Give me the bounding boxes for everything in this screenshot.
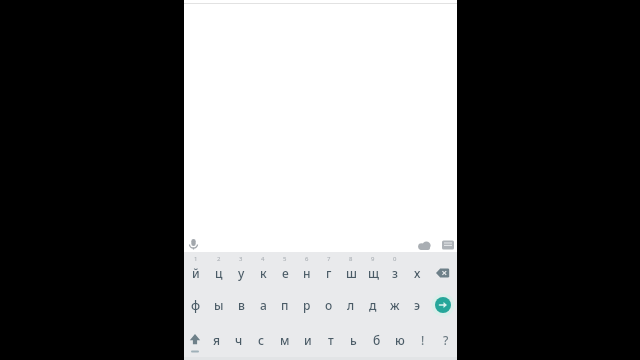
staticText: 3 bbox=[239, 255, 243, 263]
staticText: п bbox=[281, 297, 289, 313]
button[interactable]: а bbox=[252, 287, 274, 322]
staticText: р bbox=[303, 297, 311, 313]
button[interactable]: 7 bbox=[318, 252, 340, 287]
button[interactable]: х bbox=[406, 252, 428, 287]
button[interactable]: о bbox=[318, 287, 340, 322]
button[interactable]: ы bbox=[207, 287, 230, 322]
button[interactable]: м bbox=[273, 322, 296, 357]
button[interactable]: ? bbox=[434, 322, 457, 357]
button[interactable] bbox=[428, 252, 457, 287]
staticText: ж bbox=[390, 297, 400, 313]
staticText: с bbox=[258, 332, 265, 348]
button[interactable]: ж bbox=[384, 287, 406, 322]
button[interactable]: 0 bbox=[384, 252, 406, 287]
button[interactable]: с bbox=[250, 322, 273, 357]
button[interactable]: 5 bbox=[274, 252, 296, 287]
staticText: т bbox=[328, 332, 334, 348]
staticText: 9 bbox=[371, 255, 375, 263]
button[interactable]: ф bbox=[184, 287, 207, 322]
button[interactable]: э bbox=[406, 287, 428, 322]
staticText: ф bbox=[191, 297, 201, 313]
staticText: 0 bbox=[393, 255, 397, 263]
staticText: д bbox=[369, 297, 377, 313]
staticText: у bbox=[238, 265, 245, 281]
staticText: ш bbox=[346, 265, 357, 281]
button[interactable]: ч bbox=[228, 322, 250, 357]
button[interactable]: 4 bbox=[252, 252, 274, 287]
button[interactable]: б bbox=[365, 322, 388, 357]
staticText: л bbox=[347, 297, 355, 313]
staticText: й bbox=[192, 265, 200, 281]
staticText: 4 bbox=[261, 255, 265, 263]
button[interactable] bbox=[186, 237, 202, 253]
button[interactable]: ю bbox=[388, 322, 411, 357]
staticText: о bbox=[325, 297, 333, 313]
staticText: ю bbox=[395, 332, 405, 348]
button[interactable]: д bbox=[362, 287, 384, 322]
staticText: э bbox=[414, 297, 421, 313]
button[interactable]: и bbox=[296, 322, 319, 357]
staticText: м bbox=[280, 332, 290, 348]
staticText: к bbox=[260, 265, 267, 281]
button[interactable]: 2 bbox=[207, 252, 230, 287]
staticText: ? bbox=[443, 332, 449, 348]
button[interactable]: ь bbox=[342, 322, 365, 357]
button[interactable]: р bbox=[296, 287, 318, 322]
staticText: х bbox=[414, 265, 421, 281]
button[interactable] bbox=[440, 237, 456, 253]
staticText: щ bbox=[368, 265, 379, 281]
staticText: ч bbox=[235, 332, 243, 348]
button[interactable]: 9 bbox=[362, 252, 384, 287]
staticText: е bbox=[282, 265, 289, 281]
staticText: 1 bbox=[194, 255, 198, 263]
staticText: я bbox=[213, 332, 221, 348]
staticText: а bbox=[260, 297, 267, 313]
button[interactable]: 8 bbox=[340, 252, 362, 287]
staticText: б bbox=[373, 332, 381, 348]
staticText: ь bbox=[350, 332, 357, 348]
button[interactable]: ! bbox=[411, 322, 434, 357]
staticText: ц bbox=[215, 265, 223, 281]
staticText: з bbox=[392, 265, 398, 281]
button[interactable]: 1 bbox=[184, 252, 207, 287]
staticText: н bbox=[303, 265, 311, 281]
staticText: 6 bbox=[305, 255, 309, 263]
button[interactable]: 3 bbox=[230, 252, 252, 287]
staticText: 8 bbox=[349, 255, 353, 263]
button[interactable] bbox=[428, 287, 457, 322]
staticText: и bbox=[304, 332, 312, 348]
button[interactable]: я bbox=[206, 322, 228, 357]
button[interactable] bbox=[184, 322, 206, 357]
staticText: ы bbox=[214, 297, 224, 313]
button[interactable]: 6 bbox=[296, 252, 318, 287]
button[interactable]: т bbox=[319, 322, 342, 357]
button[interactable] bbox=[416, 238, 432, 254]
staticText: 5 bbox=[283, 255, 287, 263]
button[interactable]: л bbox=[340, 287, 362, 322]
staticText: в bbox=[238, 297, 245, 313]
button[interactable]: п bbox=[274, 287, 296, 322]
staticText: ! bbox=[421, 332, 425, 348]
staticText: 2 bbox=[217, 255, 221, 263]
staticText: 7 bbox=[327, 255, 331, 263]
staticText: г bbox=[326, 265, 332, 281]
button[interactable]: в bbox=[230, 287, 252, 322]
